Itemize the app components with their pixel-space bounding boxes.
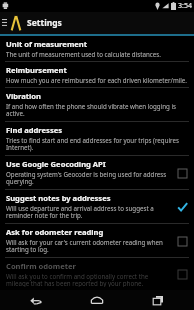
button[interactable]: Unit of measurement <box>0 36 194 61</box>
button[interactable]: Unchecked <box>175 166 189 180</box>
staticText: Vibration <box>6 91 42 101</box>
staticText: Reimbursement <box>6 65 67 75</box>
button[interactable]: Checked <box>175 200 189 214</box>
staticText: Suggest notes by addresses <box>6 193 111 203</box>
staticText: Will ask for your car's current odometer… <box>6 238 171 254</box>
button[interactable]: Unchecked <box>175 234 189 248</box>
staticText: Settings <box>27 17 62 29</box>
button[interactable]: Recent apps <box>133 290 183 310</box>
button[interactable]: Navigate up <box>0 12 8 34</box>
staticText: How much you are reimbursed for each dri… <box>6 76 188 84</box>
button[interactable]: Ask for odometer reading <box>0 224 194 257</box>
staticText: Tries to find start and end addresses fo… <box>6 136 189 152</box>
staticText: Find addresses <box>6 125 63 135</box>
button[interactable]: Reimbursement <box>0 62 194 87</box>
button[interactable]: Use Google Geocoding API <box>0 156 194 189</box>
staticText: Will ask you to confirm and optionally c… <box>6 272 171 287</box>
button[interactable]: Back <box>11 290 61 310</box>
staticText: The unit of measurement used to calculat… <box>6 50 161 58</box>
button[interactable]: Confirm odometer <box>0 258 194 290</box>
staticText: Unit of measurement <box>6 39 88 49</box>
staticText: If and how often the phone should vibrat… <box>6 102 189 118</box>
button[interactable]: Find addresses <box>0 122 194 155</box>
staticText: Use Google Geocoding API <box>6 159 106 169</box>
staticText: 3:54 <box>178 1 192 11</box>
button[interactable]: Suggest notes by addresses <box>0 190 194 223</box>
button[interactable]: Home <box>72 290 122 310</box>
staticText: Confirm odometer <box>6 261 76 271</box>
staticText: Will use departure and arrival address t… <box>6 204 171 220</box>
staticText: Ask for odometer reading <box>6 227 104 237</box>
button[interactable]: Unchecked <box>175 267 189 281</box>
staticText: Operating system's Geocoder is being use… <box>6 170 171 186</box>
button[interactable]: Vibration <box>0 88 194 121</box>
